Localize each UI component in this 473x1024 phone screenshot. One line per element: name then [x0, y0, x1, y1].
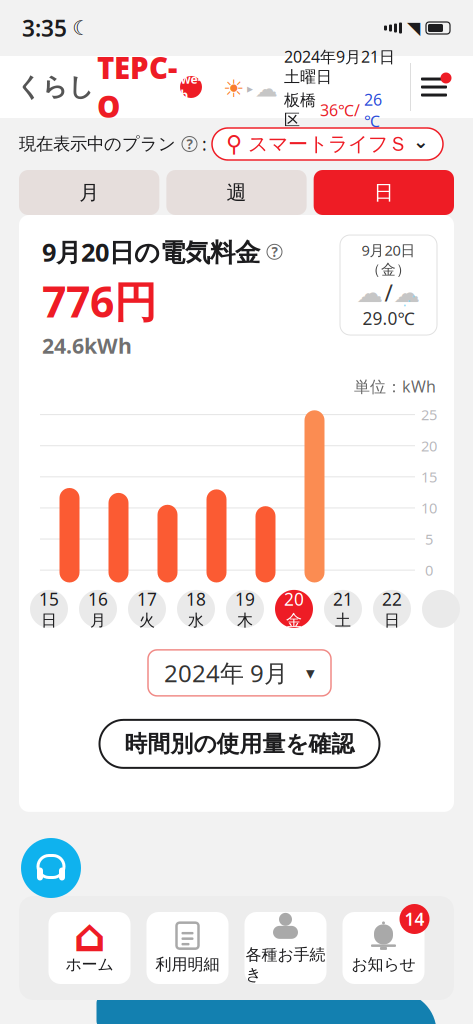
button[interactable]: 利用明細: [146, 912, 228, 984]
button[interactable]: 16: [79, 590, 117, 628]
staticText: 17: [137, 587, 157, 610]
staticText: 木: [237, 611, 253, 630]
staticText: ⋰: [402, 293, 415, 308]
staticText: 3:35: [22, 13, 67, 43]
staticText: 29.0℃: [362, 307, 414, 330]
staticText: ▾: [306, 663, 315, 683]
button[interactable]: 週: [166, 170, 307, 215]
button[interactable]: 月: [19, 170, 159, 215]
staticText: 日: [41, 611, 57, 630]
staticText: 時間別の使用量を確認: [124, 730, 354, 758]
staticText: お知らせ: [351, 955, 415, 974]
staticText: 5: [425, 529, 433, 549]
button[interactable]: 時間別の使用量を確認: [99, 720, 379, 768]
button[interactable]: ⌂: [48, 912, 130, 984]
staticText: ☁: [393, 278, 420, 308]
button[interactable]: 20: [275, 590, 313, 628]
staticText: 15: [421, 467, 437, 487]
staticText: ?: [186, 135, 192, 153]
staticText: 現在表示中のプラン: [19, 133, 176, 155]
staticText: 9月20日の電気料金: [42, 235, 260, 269]
staticText: ⌂: [73, 910, 105, 961]
staticText: 利用明細: [155, 955, 219, 974]
button[interactable]: 15: [30, 590, 68, 628]
staticText: ◥: [407, 18, 420, 38]
button[interactable]: 19: [226, 590, 264, 628]
button[interactable]: 17: [128, 590, 166, 628]
staticText: くらし: [16, 71, 94, 102]
staticText: :: [197, 132, 212, 155]
staticText: （金）: [366, 261, 411, 279]
button[interactable]: 21: [324, 590, 362, 628]
staticText: 20: [421, 436, 437, 455]
button[interactable]: くらしTEPCO web: [16, 48, 202, 126]
staticText: 776円: [42, 273, 157, 329]
staticText: 10: [421, 498, 437, 518]
button[interactable]: 日: [314, 170, 454, 215]
staticText: 日: [384, 611, 400, 630]
button[interactable]: お知らせ: [342, 912, 424, 984]
button[interactable]: 22: [373, 590, 411, 628]
button[interactable]: 2024年 9月: [148, 650, 331, 696]
staticText: 21: [333, 587, 353, 610]
staticText: 週: [226, 180, 246, 205]
button[interactable]: ⚲: [212, 128, 443, 160]
staticText: 単位：kWh: [354, 376, 436, 397]
staticText: 18: [186, 587, 206, 610]
staticText: ☾: [72, 17, 90, 39]
staticText: 日: [374, 180, 394, 205]
button[interactable]: サポート: [21, 838, 81, 898]
staticText: 板橋区: [284, 90, 316, 130]
staticText: 金: [286, 611, 302, 630]
staticText: web: [180, 71, 201, 103]
button[interactable]: メニュー: [411, 63, 457, 111]
staticText: スマートライフＳ: [248, 132, 408, 156]
staticText: 36℃/: [320, 99, 360, 121]
button[interactable]: 各種お手続き: [244, 912, 326, 984]
staticText: 火: [139, 611, 155, 630]
staticText: 月: [79, 180, 99, 205]
button[interactable]: ☀: [223, 46, 398, 128]
staticText: 19: [235, 587, 255, 610]
staticText: TEPCO: [97, 48, 177, 126]
staticText: 20: [284, 587, 304, 610]
staticText: 水: [188, 611, 204, 630]
staticText: ☁: [356, 278, 383, 308]
button[interactable]: 18: [177, 590, 215, 628]
staticText: /: [384, 278, 392, 308]
staticText: 0: [425, 560, 433, 580]
staticText: ▸: [247, 82, 253, 95]
staticText: 14: [404, 907, 424, 930]
staticText: 土: [335, 611, 351, 630]
staticText: 9月20日: [361, 240, 415, 260]
staticText: 16: [88, 587, 108, 610]
staticText: 月: [90, 611, 106, 630]
staticText: 26℃: [364, 89, 382, 131]
staticText: ⌄: [413, 131, 429, 152]
staticText: ホーム: [65, 955, 113, 974]
staticText: 24.6kWh: [42, 331, 132, 360]
staticText: 2024年 9月: [164, 657, 288, 689]
staticText: 各種お手続き: [245, 945, 325, 984]
staticText: ☁: [255, 76, 278, 101]
staticText: ?: [271, 243, 277, 261]
staticText: 15: [39, 587, 59, 610]
staticText: 22: [382, 587, 402, 610]
staticText: ☀: [223, 75, 245, 102]
staticText: ⚲: [226, 131, 243, 157]
staticText: 2024年9月21日 土曜日: [284, 46, 395, 87]
staticText: 25: [421, 405, 437, 424]
